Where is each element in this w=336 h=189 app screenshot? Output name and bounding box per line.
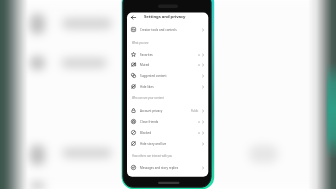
button[interactable]: Settings and privacy bbox=[144, 13, 186, 20]
staticText: Close friends bbox=[140, 120, 159, 124]
staticText: How others can interact with you bbox=[132, 154, 173, 158]
staticText: Who can see your content bbox=[132, 96, 164, 100]
staticText: Creator tools and controls bbox=[140, 28, 177, 32]
staticText: Suggested content bbox=[140, 74, 167, 78]
staticText: Hide likes bbox=[140, 85, 154, 89]
staticText: Hide story and live bbox=[140, 142, 167, 146]
staticText: Settings and privacy bbox=[144, 14, 186, 20]
staticText: Account privacy bbox=[140, 109, 163, 113]
button[interactable]: Hide story and live bbox=[127, 138, 208, 149]
staticText: Blocked bbox=[140, 131, 152, 135]
button[interactable]: Account privacy bbox=[127, 105, 208, 116]
staticText: Favorites bbox=[140, 53, 153, 57]
staticText: Public bbox=[191, 109, 199, 113]
button[interactable]: Close friends bbox=[127, 116, 208, 127]
staticText: What you see bbox=[132, 41, 149, 45]
button[interactable]: Creator tools and controls bbox=[127, 24, 208, 35]
button[interactable]: Muted bbox=[127, 59, 208, 70]
button[interactable]: Favorites bbox=[127, 49, 208, 60]
button[interactable]: Suggested content bbox=[127, 70, 208, 81]
button[interactable]: Hide likes bbox=[127, 81, 208, 92]
button[interactable]: Messages and story replies bbox=[127, 162, 208, 173]
staticText: Muted bbox=[140, 63, 150, 67]
button[interactable]: Blocked bbox=[127, 127, 208, 138]
staticText: Messages and story replies bbox=[140, 166, 179, 170]
button[interactable]: Back bbox=[129, 13, 138, 22]
